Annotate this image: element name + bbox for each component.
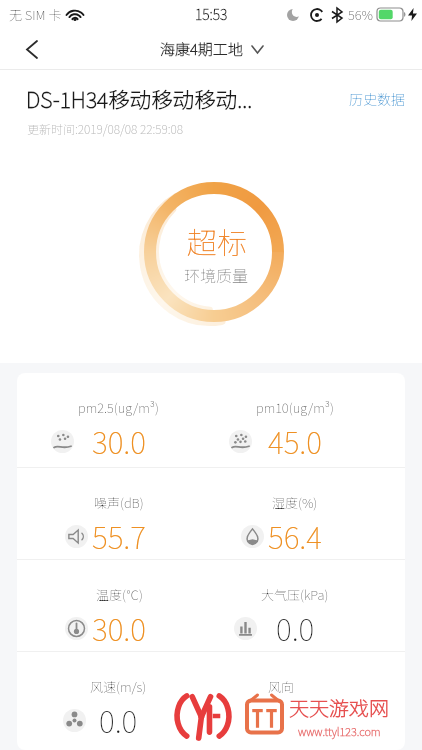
staticText: 风速(m/s) (90, 677, 147, 696)
staticText: pm10(ug/m³) (256, 398, 334, 417)
staticText: 30.0 (92, 419, 146, 462)
button[interactable]: 温度(℃) (17, 560, 193, 651)
staticText: 15:53 (195, 4, 228, 24)
staticText: 超标 (187, 219, 247, 262)
staticText: 更新时间:2019/08/08 22:59:08 (27, 120, 183, 137)
button[interactable]: 风速(m/s) (17, 652, 193, 750)
staticText: 环境质量 (184, 263, 249, 286)
staticText: 56.4 (268, 514, 322, 557)
staticText: 56% (348, 5, 373, 24)
staticText: 湿度(%) (272, 493, 318, 512)
staticText: 55.7 (92, 514, 146, 557)
staticText: 风向 (268, 677, 295, 696)
staticText: 噪声(dB) (94, 493, 144, 512)
staticText: DS-1H34移动移动移动... (26, 83, 349, 114)
staticText: 天天游戏网 (289, 693, 389, 722)
button[interactable]: pm2.5(ug/m³) (17, 373, 193, 467)
button[interactable]: 湿度(%) (193, 468, 369, 559)
staticText: 无 SIM 卡 (9, 5, 62, 24)
button[interactable]: pm10(ug/m³) (193, 373, 369, 467)
staticText: 0.0 (99, 698, 138, 741)
button[interactable]: 海康4期工地 (160, 38, 263, 60)
button[interactable]: 大气压(kPa) (193, 560, 369, 651)
button[interactable] (18, 35, 46, 63)
button[interactable]: 风向 (193, 652, 369, 750)
button[interactable]: 噪声(dB) (17, 468, 193, 559)
staticText: 海康4期工地 (160, 38, 243, 60)
staticText: 0.0 (276, 606, 315, 649)
staticText: 大气压(kPa) (261, 585, 329, 604)
staticText: 30.0 (92, 606, 146, 649)
staticText: 温度(℃) (96, 585, 143, 604)
staticText: pm2.5(ug/m³) (78, 398, 159, 417)
staticText: 0.0 (262, 698, 301, 741)
staticText: www.ttyl123.com (298, 723, 381, 739)
staticText: 45.0 (268, 419, 322, 462)
button[interactable]: 历史数据 (349, 89, 405, 109)
